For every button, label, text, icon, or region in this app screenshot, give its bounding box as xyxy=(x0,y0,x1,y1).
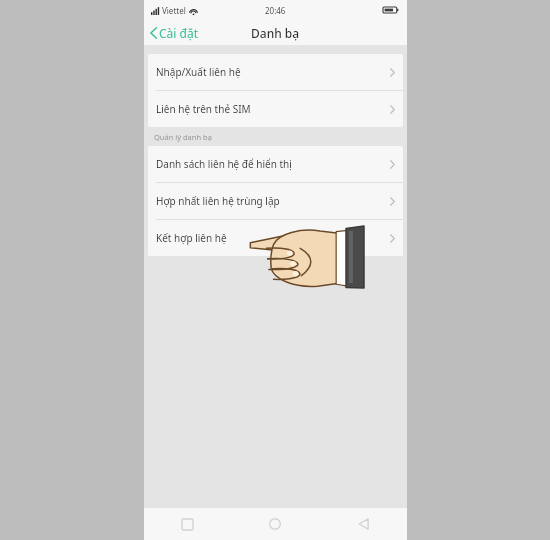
button[interactable]: Kết hợp liên hệ xyxy=(148,220,403,256)
button[interactable]: Nhập/Xuất liên hệ xyxy=(148,54,403,90)
button[interactable]: Cài đặt xyxy=(144,20,207,45)
button[interactable]: Danh sách liên hệ để hiển thị xyxy=(148,146,403,182)
staticText: Danh bạ xyxy=(251,25,300,41)
staticText: Cài đặt xyxy=(159,25,199,41)
staticText: Danh sách liên hệ để hiển thị xyxy=(156,157,390,171)
staticText: Nhập/Xuất liên hệ xyxy=(156,65,390,79)
button[interactable]: Recent apps xyxy=(144,508,231,540)
button[interactable]: Liên hệ trên thẻ SIM xyxy=(148,91,403,127)
button[interactable]: Home xyxy=(231,508,319,540)
staticText: Hợp nhất liên hệ trùng lặp xyxy=(156,194,390,208)
staticText: Quản lý danh bạ xyxy=(154,132,212,142)
staticText: Viettel xyxy=(162,5,186,16)
staticText: 20:46 xyxy=(265,5,286,16)
button[interactable]: Hợp nhất liên hệ trùng lặp xyxy=(148,183,403,219)
staticText: Kết hợp liên hệ xyxy=(156,231,390,245)
button[interactable]: Back xyxy=(319,508,407,540)
staticText: Liên hệ trên thẻ SIM xyxy=(156,102,390,116)
